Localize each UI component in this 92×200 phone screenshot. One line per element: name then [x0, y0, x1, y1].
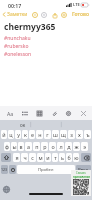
staticText: Заметки — [7, 11, 28, 18]
staticText: Ввод — [78, 167, 89, 173]
staticText: щ — [61, 131, 66, 138]
button[interactable]: р — [41, 142, 48, 151]
staticText: ю — [74, 154, 79, 161]
button[interactable]: з — [68, 130, 75, 139]
staticText: й — [2, 131, 6, 138]
staticText: ь — [61, 154, 64, 161]
button[interactable]: ц — [8, 130, 14, 139]
button[interactable]: Emoji — [9, 165, 16, 174]
button[interactable]: у — [15, 130, 21, 139]
staticText: #onelesson — [4, 51, 32, 58]
button[interactable]: х — [76, 130, 83, 139]
button[interactable]: ч — [21, 153, 28, 162]
button[interactable]: и — [45, 153, 51, 162]
staticText: приложение — [73, 175, 90, 179]
staticText: ч — [23, 154, 27, 161]
staticText: chermyy365 — [4, 21, 56, 33]
button[interactable]: к — [22, 130, 28, 139]
button[interactable]: в — [18, 142, 24, 151]
button[interactable]: е — [29, 130, 35, 139]
button[interactable]: й — [1, 130, 7, 139]
staticText: т — [54, 154, 57, 161]
button[interactable]: Готово — [69, 10, 92, 19]
button[interactable]: ы — [11, 142, 17, 151]
button[interactable]: а — [25, 142, 32, 151]
button[interactable]: Camera — [64, 109, 72, 117]
staticText: Готово — [72, 11, 89, 18]
staticText: н — [38, 131, 42, 138]
button[interactable]: Table — [35, 109, 43, 117]
button[interactable]: п — [33, 142, 40, 151]
staticText: #rubersko — [4, 43, 29, 50]
button[interactable]: э — [81, 142, 88, 151]
button[interactable]: ъ — [84, 130, 91, 139]
staticText: л — [59, 143, 63, 150]
staticText: ок — [20, 122, 26, 128]
staticText: с — [31, 154, 34, 161]
button[interactable]: ш — [52, 130, 59, 139]
staticText: ъ — [86, 131, 90, 138]
button[interactable]: щ — [60, 130, 67, 139]
staticText: Скачать — [76, 171, 86, 175]
staticText: LTE — [73, 2, 80, 8]
staticText: Aa — [7, 110, 14, 117]
staticText: Пробел — [38, 167, 54, 173]
staticText: а — [27, 143, 30, 150]
staticText: о — [51, 143, 55, 150]
button[interactable]: б — [66, 153, 72, 162]
button[interactable]: д — [65, 142, 72, 151]
button[interactable]: с — [29, 153, 36, 162]
button[interactable]: Switch keyboard — [3, 186, 10, 193]
staticText: и — [46, 154, 50, 161]
button[interactable]: т — [52, 153, 58, 162]
staticText: г — [46, 131, 49, 138]
staticText: я — [15, 154, 19, 161]
staticText: 123 — [1, 167, 8, 172]
staticText: ц — [9, 131, 13, 138]
staticText: м — [38, 154, 43, 161]
staticText: д — [67, 143, 71, 150]
button[interactable]: Attach — [50, 109, 58, 117]
button[interactable]: Shift — [1, 153, 11, 162]
staticText: #nunchaku — [4, 35, 31, 42]
button[interactable]: More options — [61, 12, 67, 18]
button[interactable]: Ввод — [76, 165, 91, 174]
button[interactable]: н — [36, 130, 43, 139]
button[interactable]: Заметки — [0, 10, 29, 19]
button[interactable]: 123 — [1, 165, 8, 174]
button[interactable]: Пробел — [17, 165, 75, 174]
staticText: э — [83, 143, 86, 150]
button[interactable]: ю — [73, 153, 79, 162]
staticText: к — [24, 131, 27, 138]
button[interactable]: о — [49, 142, 56, 151]
staticText: ш — [53, 131, 58, 138]
button[interactable]: Format text — [6, 109, 14, 117]
button[interactable]: Share — [52, 12, 58, 18]
staticText: б — [67, 154, 71, 161]
button[interactable]: Markup — [32, 12, 38, 18]
button[interactable]: Checklist — [21, 109, 29, 117]
staticText: в — [19, 143, 23, 150]
button[interactable]: ж — [73, 142, 80, 151]
staticText: ф — [5, 143, 9, 150]
button[interactable]: г — [44, 130, 51, 139]
button[interactable]: я — [13, 153, 20, 162]
staticText: х — [78, 131, 81, 138]
staticText: ы — [12, 143, 17, 150]
staticText: у — [17, 131, 20, 138]
staticText: ж — [74, 143, 79, 150]
staticText: р — [43, 143, 47, 150]
button[interactable]: ф — [4, 142, 10, 151]
button[interactable]: Pen — [41, 12, 47, 18]
staticText: п — [35, 143, 39, 150]
button[interactable]: л — [57, 142, 64, 151]
staticText: з — [70, 131, 73, 138]
staticText: 00:17 — [8, 2, 22, 9]
button[interactable]: ь — [59, 153, 65, 162]
staticText: е — [31, 131, 34, 138]
button[interactable]: м — [37, 153, 44, 162]
button[interactable]: Close keyboard — [79, 109, 87, 117]
button[interactable]: Backspace — [81, 153, 91, 162]
